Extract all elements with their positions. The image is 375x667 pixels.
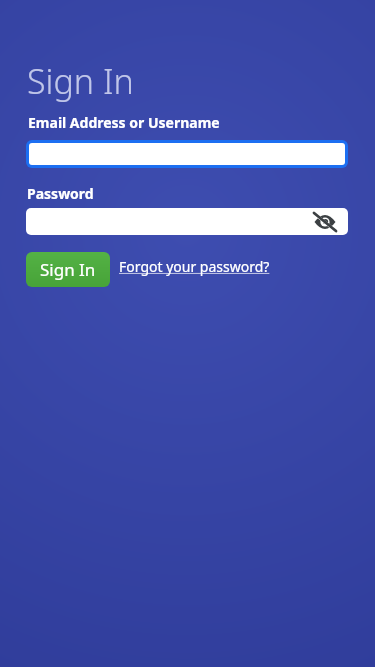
staticText: Password xyxy=(27,184,94,203)
button[interactable]: Forgot your password? xyxy=(119,257,270,276)
staticText: Sign In xyxy=(27,58,134,104)
staticText: Email Address or Username xyxy=(28,113,220,132)
button[interactable] xyxy=(26,208,348,235)
button[interactable]: Sign In xyxy=(26,252,110,287)
button[interactable] xyxy=(26,140,348,168)
staticText: Sign In xyxy=(40,258,96,281)
staticText: Forgot your password? xyxy=(119,257,270,276)
